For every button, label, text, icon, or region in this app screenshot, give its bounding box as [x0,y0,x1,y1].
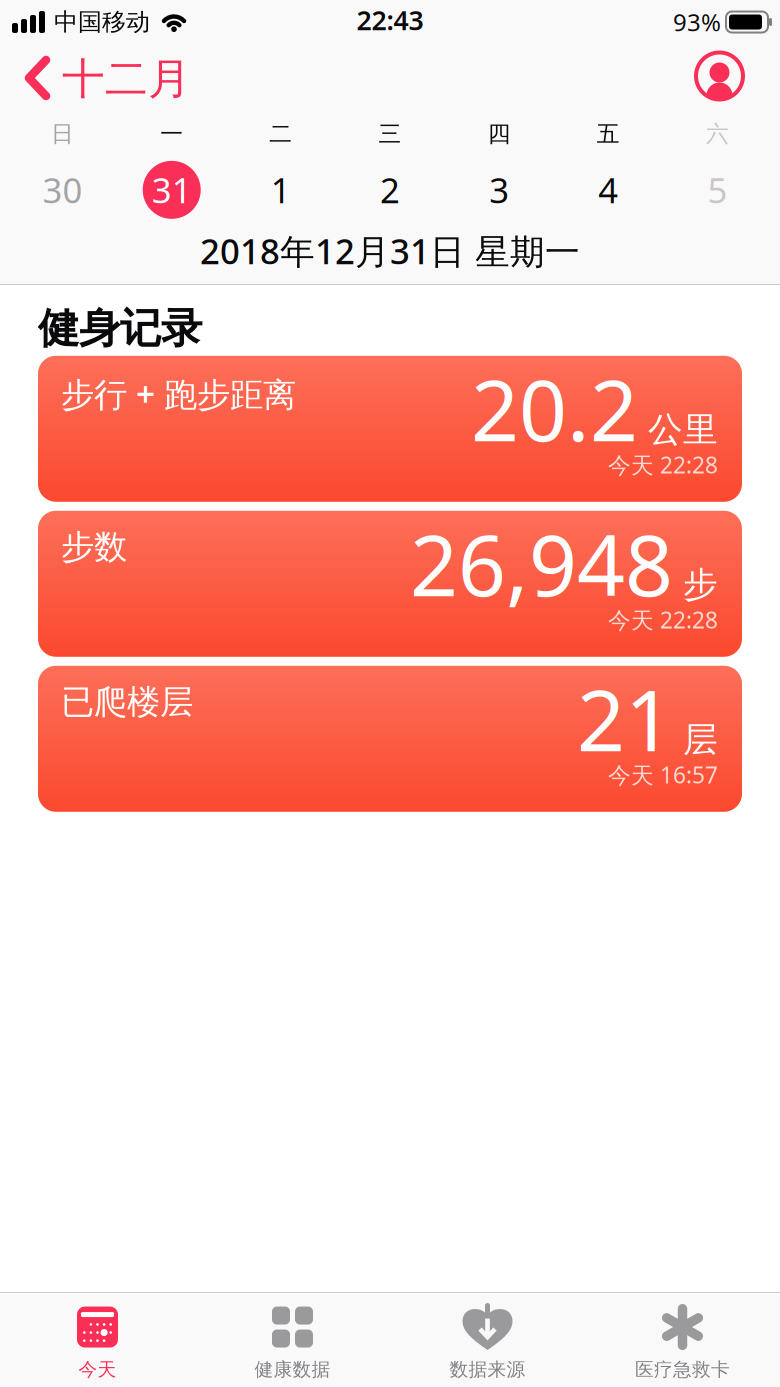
staticText: 26,948 [410,508,673,619]
staticText: 公里 [648,408,718,451]
staticText: 3 [489,167,509,213]
staticText: 步数 [61,527,127,568]
button[interactable]: 今天 [0,1304,195,1381]
button[interactable]: 十二月 [0,48,191,100]
button[interactable]: 数据来源 [390,1304,585,1381]
staticText: 四 [488,120,511,148]
staticText: 1 [271,167,291,213]
staticText: 今天 [78,1358,116,1381]
button[interactable]: 1 [226,161,335,219]
staticText: 步 [683,563,718,606]
staticText: 健康数据 [254,1358,330,1381]
button[interactable]: 已爬楼层 [0,666,742,812]
button[interactable]: 步数 [0,511,742,657]
staticText: 今天 22:28 [608,605,718,635]
staticText: 五 [597,120,620,148]
staticText: 2 [380,167,400,213]
staticText: 一 [160,120,183,148]
staticText: 二 [269,120,292,148]
staticText: 20.2 [471,353,638,464]
button[interactable]: 医疗急救卡 [585,1304,780,1381]
staticText: 日 [51,120,74,148]
staticText: 21 [577,663,673,774]
staticText: 三 [378,120,401,148]
staticText: 22:43 [356,2,423,38]
button[interactable]: 5 [663,161,772,219]
staticText: 30 [43,167,83,213]
button[interactable]: 30 [8,161,117,219]
staticText: 六 [706,120,729,148]
staticText: 4 [598,167,618,213]
staticText: 健身记录 [38,303,202,354]
staticText: 今天 16:57 [608,760,718,790]
staticText: 93% [673,6,721,38]
staticText: 十二月 [62,53,191,105]
staticText: 31 [152,167,192,213]
staticText: 5 [707,167,727,213]
staticText: 层 [683,718,718,761]
staticText: 已爬楼层 [61,682,193,723]
button[interactable]: 健康数据 [195,1304,390,1381]
staticText: 2018年12月31日 星期一 [200,228,580,274]
button[interactable]: 3 [445,161,554,219]
staticText: 医疗急救卡 [635,1358,730,1381]
staticText: 数据来源 [449,1358,525,1381]
staticText: 中国移动 [54,7,150,37]
button[interactable]: 31 [117,161,226,219]
button[interactable]: 4 [554,161,663,219]
button[interactable]: 2 [335,161,444,219]
button[interactable]: 步行 + 跑步距离 [0,356,742,502]
staticText: 步行 + 跑步距离 [61,372,296,416]
button[interactable] [696,50,780,97]
staticText: 今天 22:28 [608,450,718,480]
